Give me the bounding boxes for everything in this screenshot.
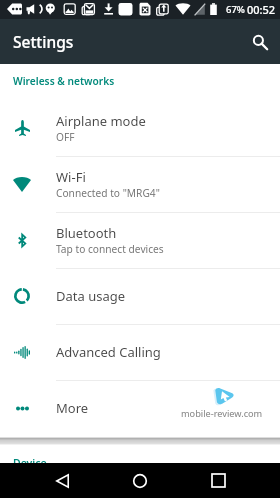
- button[interactable]: Data usage: [0, 268, 280, 324]
- button[interactable]: Back: [23, 463, 101, 498]
- staticText: Settings: [13, 31, 74, 52]
- staticText: Connected to "MRG4": [56, 186, 160, 200]
- staticText: 67%: [226, 3, 245, 16]
- staticText: OFF: [56, 130, 75, 144]
- staticText: Wireless & networks: [13, 74, 115, 88]
- staticText: 00:52: [247, 2, 276, 17]
- button[interactable]: Airplane mode: [0, 100, 280, 156]
- staticText: Data usage: [56, 287, 126, 305]
- staticText: mobile-review.com: [181, 407, 263, 420]
- staticText: More: [56, 399, 89, 417]
- staticText: Advanced Calling: [56, 343, 161, 361]
- button[interactable]: Advanced Calling: [0, 324, 280, 380]
- staticText: Device: [13, 456, 47, 463]
- staticText: Wi-Fi: [56, 168, 86, 186]
- button[interactable]: Search: [240, 22, 280, 62]
- staticText: Airplane mode: [56, 112, 146, 130]
- button[interactable]: Home: [101, 463, 179, 498]
- button[interactable]: Wi-Fi: [0, 156, 280, 212]
- button[interactable]: Recent apps: [179, 463, 257, 498]
- staticText: Tap to connect devices: [56, 242, 164, 256]
- button[interactable]: More: [0, 380, 280, 436]
- staticText: Bluetooth: [56, 224, 117, 242]
- button[interactable]: Bluetooth: [0, 212, 280, 268]
